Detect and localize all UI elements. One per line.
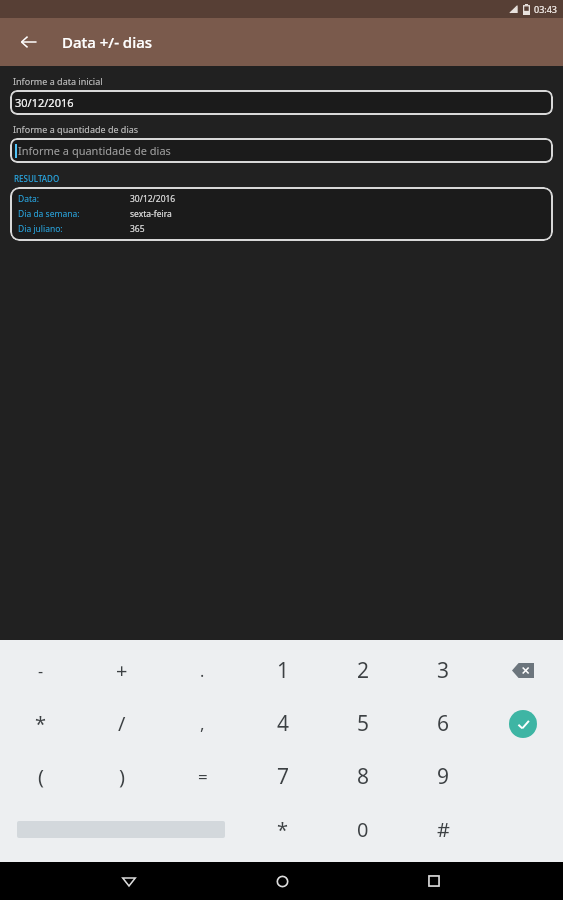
staticText: * — [35, 710, 47, 737]
button[interactable]: 1 — [243, 644, 323, 697]
staticText: 3 — [437, 656, 450, 685]
button[interactable]: ) — [81, 750, 162, 803]
button[interactable]: 0 — [323, 803, 403, 856]
staticText: . — [200, 660, 205, 682]
button[interactable]: 2 — [323, 644, 403, 697]
staticText: Informe a quantidade de dias — [18, 143, 171, 158]
button[interactable]: 3 — [403, 644, 483, 697]
staticText: 365 — [130, 223, 145, 235]
staticText: 8 — [357, 762, 370, 791]
button[interactable]: Back — [12, 25, 46, 59]
button[interactable]: 6 — [403, 697, 483, 750]
button[interactable]: / — [81, 697, 162, 750]
staticText: - — [38, 660, 44, 682]
staticText: Data: — [18, 193, 40, 205]
button[interactable]: 9 — [403, 750, 483, 803]
button[interactable]: Home — [258, 862, 306, 900]
button[interactable]: Back — [105, 862, 153, 900]
button[interactable]: 30/12/2016 — [10, 90, 553, 115]
button[interactable]: . — [162, 644, 243, 697]
button[interactable]: Space — [0, 803, 242, 856]
staticText: RESULTADO — [14, 173, 60, 184]
button[interactable]: 8 — [323, 750, 403, 803]
button[interactable]: # — [403, 803, 483, 856]
button[interactable]: Data: — [10, 187, 553, 241]
button[interactable]: ( — [0, 750, 81, 803]
staticText: ( — [38, 763, 44, 790]
button[interactable]: Enter — [483, 697, 563, 750]
staticText: 30/12/2016 — [15, 95, 74, 110]
staticText: ) — [119, 763, 125, 790]
staticText: Data +/- dias — [62, 32, 153, 52]
button[interactable]: 5 — [323, 697, 403, 750]
staticText: 30/12/2016 — [130, 193, 176, 205]
button[interactable]: Backspace — [483, 644, 563, 697]
button[interactable]: = — [162, 750, 243, 803]
button[interactable]: Recent apps — [410, 862, 458, 900]
button[interactable]: 4 — [243, 697, 323, 750]
staticText: 5 — [357, 709, 370, 738]
staticText: Informe a data inicial — [13, 75, 103, 87]
staticText: 1 — [277, 656, 290, 685]
button[interactable]: , — [162, 697, 243, 750]
staticText: 7 — [277, 762, 290, 791]
staticText: 9 — [437, 762, 450, 791]
staticText: 4 — [277, 709, 290, 738]
staticText: , — [200, 712, 205, 735]
button[interactable]: 7 — [243, 750, 323, 803]
button[interactable]: - — [0, 644, 81, 697]
button[interactable]: + — [81, 644, 162, 697]
staticText: 2 — [357, 656, 370, 685]
staticText: / — [118, 710, 126, 737]
staticText: Dia da semana: — [18, 208, 80, 220]
button[interactable]: * — [0, 697, 81, 750]
staticText: Dia juliano: — [18, 223, 63, 235]
button[interactable]: Informe a quantidade de dias — [10, 138, 553, 163]
button[interactable]: * — [242, 803, 323, 856]
staticText: 03:43 — [534, 3, 558, 15]
staticText: sexta-feira — [130, 208, 172, 220]
staticText: = — [198, 765, 208, 788]
staticText: * — [277, 816, 289, 843]
staticText: Informe a quantidade de dias — [13, 123, 139, 135]
staticText: 6 — [437, 709, 450, 738]
staticText: + — [116, 657, 128, 684]
staticText: 0 — [357, 816, 369, 843]
staticText: # — [437, 816, 450, 843]
